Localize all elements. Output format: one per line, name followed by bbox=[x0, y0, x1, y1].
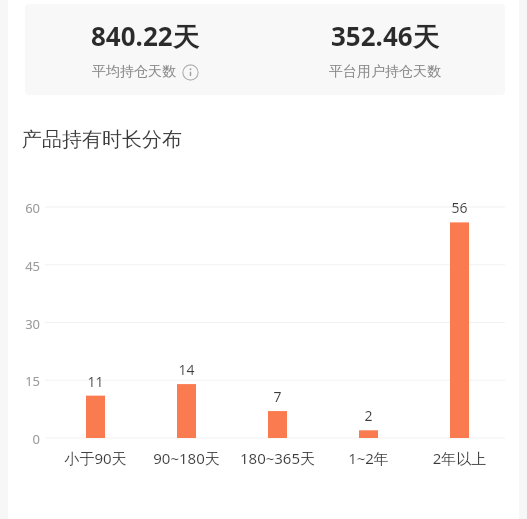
staticText: 352.46天 bbox=[331, 18, 439, 54]
staticText: 2年以上 bbox=[414, 448, 505, 468]
staticText: 1~2年 bbox=[323, 448, 414, 468]
staticText: 56 bbox=[414, 198, 505, 217]
staticText: 14 bbox=[141, 360, 232, 379]
staticText: 产品持有时长分布 bbox=[22, 127, 182, 152]
staticText: 平台用户持仓天数 bbox=[329, 63, 441, 81]
staticText: 45 bbox=[0, 257, 40, 275]
staticText: 小于90天 bbox=[50, 448, 141, 468]
staticText: 60 bbox=[0, 199, 40, 217]
staticText: 7 bbox=[232, 387, 323, 406]
staticText: 2 bbox=[323, 406, 414, 425]
staticText: 0 bbox=[0, 430, 40, 448]
button[interactable]: 说明 bbox=[182, 64, 199, 81]
button[interactable]: 840.22天 bbox=[25, 4, 265, 95]
staticText: 840.22天 bbox=[91, 18, 199, 54]
staticText: 30 bbox=[0, 315, 40, 333]
staticText: 11 bbox=[50, 372, 141, 391]
button[interactable]: 352.46天 bbox=[265, 4, 505, 95]
staticText: 90~180天 bbox=[141, 448, 232, 468]
staticText: 15 bbox=[0, 372, 40, 390]
staticText: 180~365天 bbox=[232, 448, 323, 468]
staticText: 平均持仓天数 bbox=[92, 63, 176, 81]
